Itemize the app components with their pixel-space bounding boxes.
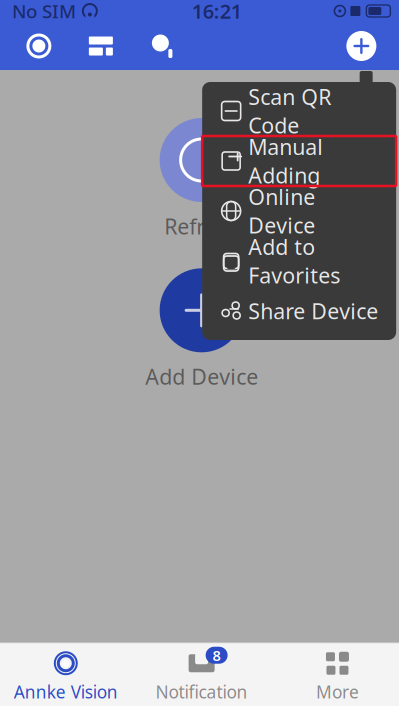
button[interactable]: 8 [134,643,269,706]
staticText: Online Device [248,183,315,239]
button[interactable]: Manual Adding [202,136,396,186]
button[interactable]: Annke Vision [0,643,134,706]
staticText: 8 [213,645,221,665]
button[interactable]: Share Device [202,286,396,336]
button[interactable]: Layout [88,35,114,57]
staticText: Scan QR Code [248,83,331,139]
staticText: Share Device [248,297,378,325]
button[interactable]: Search [150,33,176,59]
button[interactable]: Refresh [160,118,244,240]
button[interactable]: Add to Favorites [202,236,396,286]
button[interactable]: Online Device [202,186,396,236]
staticText: Refresh [164,212,239,240]
staticText: 16:21 [192,0,242,24]
staticText: Add to Favorites [248,233,340,289]
staticText: Add Device [145,362,258,391]
button[interactable]: Add Device [145,268,258,391]
button[interactable]: Live View [26,33,52,59]
staticText: No SIM [12,0,76,23]
staticText: Manual Adding [248,133,323,189]
button[interactable]: More [269,643,399,706]
button[interactable]: Add [345,30,377,62]
button[interactable]: Scan QR Code [202,86,396,136]
staticText: Notification [156,680,248,703]
staticText: More [316,680,359,703]
staticText: Annke Vision [14,680,118,703]
